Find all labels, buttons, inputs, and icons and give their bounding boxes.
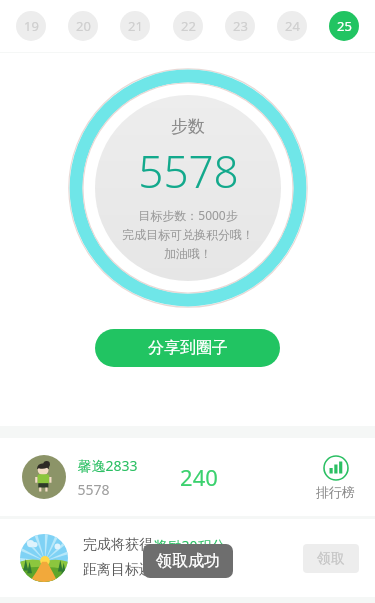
staticText: 奖励30积分 [153,536,226,555]
staticText: 5578 [77,480,110,499]
button[interactable]: 19 [16,11,46,41]
staticText: 22 [181,17,196,35]
staticText: 完成将获得 [83,536,153,554]
staticText: 步数 [171,116,205,137]
button[interactable]: 20 [68,11,98,41]
staticText: 21 [128,17,143,35]
staticText: 领取成功 [156,551,220,571]
button[interactable]: 22 [173,11,203,41]
staticText: 23 [233,17,248,35]
staticText: 加油哦！ [164,246,212,261]
button[interactable]: 23 [225,11,255,41]
button[interactable]: 25 [329,11,359,41]
button[interactable]: 领取 [303,544,359,573]
staticText: 240 [180,462,218,492]
staticText: 25 [337,17,352,35]
staticText: 19 [24,17,39,35]
staticText: 分享到圈子 [148,338,228,358]
staticText: 完成目标可兑换积分哦！ [122,227,254,242]
staticText: 24 [285,17,300,35]
staticText: 馨逸2833 [77,456,138,475]
button[interactable]: 21 [120,11,150,41]
button[interactable]: 排行榜 [312,451,359,504]
staticText: 目标步数：5000步 [138,207,238,223]
staticText: 领取 [317,550,345,568]
staticText: 20 [76,17,91,35]
staticText: 0 [167,561,176,580]
button[interactable]: 24 [277,11,307,41]
staticText: 距离目标还有 [83,561,167,579]
staticText: 5578 [138,141,239,201]
staticText: 排行榜 [316,484,355,500]
button[interactable]: 分享到圈子 [95,329,280,367]
